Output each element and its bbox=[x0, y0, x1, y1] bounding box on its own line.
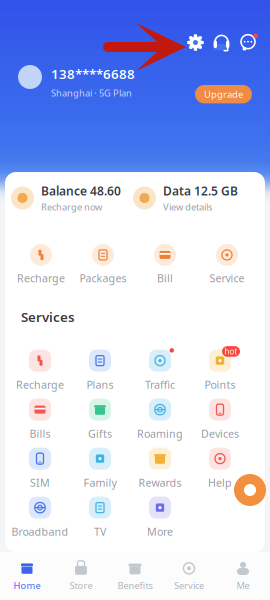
staticText: Family bbox=[83, 476, 116, 490]
staticText: Traffic bbox=[145, 378, 175, 392]
staticText: Bill bbox=[157, 271, 173, 285]
button[interactable]: Customer service bbox=[213, 34, 230, 51]
button[interactable]: More bbox=[130, 498, 190, 538]
button[interactable]: Traffic bbox=[130, 351, 190, 391]
staticText: Benefits bbox=[117, 579, 152, 592]
staticText: Plans bbox=[86, 378, 113, 392]
button[interactable]: Benefits bbox=[108, 553, 162, 599]
button[interactable]: Assistant bbox=[232, 472, 268, 508]
staticText: Devices bbox=[201, 427, 239, 441]
button[interactable]: Rewards bbox=[130, 449, 190, 489]
button[interactable]: Home bbox=[0, 553, 54, 599]
staticText: View details bbox=[163, 201, 212, 213]
staticText: Gifts bbox=[88, 427, 112, 441]
staticText: Broadband bbox=[11, 525, 68, 539]
staticText: hot bbox=[224, 346, 237, 357]
button[interactable]: Bills bbox=[10, 400, 70, 440]
button[interactable]: Me bbox=[216, 553, 270, 599]
button[interactable]: SIM bbox=[10, 449, 70, 489]
button[interactable]: Roaming bbox=[130, 400, 190, 440]
staticText: Recharge bbox=[16, 378, 64, 392]
staticText: Recharge now bbox=[41, 201, 102, 213]
staticText: Shanghai · 5G Plan bbox=[51, 87, 132, 99]
button[interactable]: Broadband bbox=[10, 498, 70, 538]
button[interactable]: Service bbox=[162, 553, 216, 599]
button[interactable]: Store bbox=[54, 553, 108, 599]
staticText: Bills bbox=[29, 427, 50, 441]
staticText: Service bbox=[209, 271, 244, 285]
staticText: 138****6688 bbox=[51, 65, 135, 83]
button[interactable]: Recharge bbox=[10, 351, 70, 391]
button[interactable]: Recharge bbox=[10, 245, 72, 284]
button[interactable]: Upgrade bbox=[195, 85, 252, 103]
staticText: Services bbox=[21, 308, 75, 326]
button[interactable]: Family bbox=[70, 449, 130, 489]
button[interactable]: Gifts bbox=[70, 400, 130, 440]
staticText: Data 12.5 GB bbox=[163, 183, 238, 199]
staticText: Roaming bbox=[137, 427, 183, 441]
staticText: Service bbox=[174, 579, 204, 592]
staticText: TV bbox=[94, 525, 106, 539]
staticText: Recharge bbox=[17, 271, 65, 285]
staticText: Points bbox=[204, 378, 235, 392]
button[interactable]: Help bbox=[190, 449, 250, 489]
staticText: Store bbox=[69, 579, 92, 592]
staticText: More bbox=[147, 525, 173, 539]
staticText: SIM bbox=[30, 476, 50, 490]
button[interactable]: Packages bbox=[72, 245, 134, 284]
button[interactable]: Messages bbox=[239, 34, 257, 51]
button[interactable]: Devices bbox=[190, 400, 250, 440]
staticText: Help bbox=[208, 476, 232, 490]
staticText: Home bbox=[13, 579, 40, 592]
button[interactable]: hot bbox=[190, 351, 250, 391]
button[interactable]: Plans bbox=[70, 351, 130, 391]
button[interactable]: TV bbox=[70, 498, 130, 538]
button[interactable]: Balance 48.60 bbox=[11, 181, 131, 215]
staticText: Rewards bbox=[138, 476, 181, 490]
button[interactable]: Data 12.5 GB bbox=[133, 181, 253, 215]
staticText: Me bbox=[236, 579, 249, 592]
button[interactable]: Settings bbox=[187, 34, 204, 51]
button[interactable]: Bill bbox=[134, 245, 196, 284]
staticText: Balance 48.60 bbox=[41, 183, 121, 199]
staticText: Packages bbox=[79, 271, 126, 285]
staticText: Upgrade bbox=[204, 88, 243, 100]
button[interactable]: Service bbox=[196, 245, 258, 284]
